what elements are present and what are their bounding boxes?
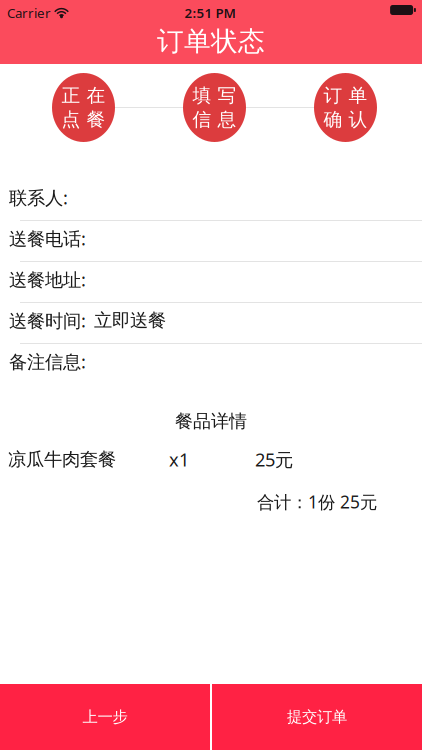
staticText: 2:51 PM	[184, 4, 235, 22]
staticText: Carrier	[7, 4, 51, 22]
staticText: 25元	[255, 447, 293, 472]
staticText: x1	[169, 447, 189, 472]
staticText: 合计：1份 25元	[257, 490, 377, 514]
staticText: 点 餐	[61, 108, 105, 131]
button[interactable]: 上一步	[0, 684, 210, 750]
staticText: 备注信息:	[9, 349, 86, 374]
staticText: 订 单	[323, 84, 367, 107]
staticText: 确 认	[323, 108, 367, 131]
staticText: 信 息	[192, 108, 236, 131]
staticText: 凉瓜牛肉套餐	[8, 448, 116, 471]
staticText: 立即送餐	[94, 309, 166, 332]
staticText: 填 写	[192, 84, 236, 107]
staticText: 联系人:	[9, 185, 68, 210]
staticText: 送餐电话:	[9, 226, 86, 251]
staticText: 提交订单	[287, 707, 347, 727]
staticText: 上一步	[82, 707, 127, 727]
button[interactable]: 提交订单	[212, 684, 422, 750]
staticText: 正 在	[61, 84, 105, 107]
staticText: 送餐时间:	[9, 308, 86, 333]
staticText: 送餐地址:	[9, 267, 86, 292]
staticText: 餐品详情	[175, 410, 247, 433]
staticText: 订单状态	[157, 25, 265, 58]
